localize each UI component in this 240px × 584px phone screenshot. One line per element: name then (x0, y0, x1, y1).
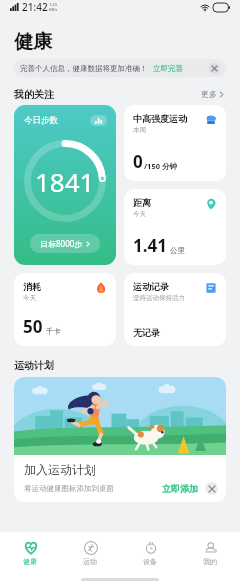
button[interactable]: 关闭 (209, 63, 220, 74)
staticText: 今天 (133, 210, 146, 218)
staticText: 我的 (203, 557, 217, 566)
staticText: 健康 (23, 557, 37, 566)
staticText: 1.41 (133, 234, 167, 257)
staticText: 0 (133, 150, 143, 173)
staticText: 21:42 (22, 0, 48, 14)
staticText: 目标8000步 (40, 238, 83, 249)
staticText: 公里 (168, 245, 185, 255)
staticText: 千卡 (44, 326, 61, 336)
staticText: 将运动健康图标添加到桌面 (24, 484, 114, 493)
button[interactable]: 关闭 (205, 482, 218, 495)
button[interactable]: 健康 (0, 532, 60, 574)
staticText: 立即添加 (162, 483, 198, 494)
staticText: 我的关注 (14, 88, 54, 101)
staticText: 加入运动计划 (24, 462, 96, 477)
staticText: 无记录 (133, 327, 160, 338)
button[interactable]: 统计 (90, 115, 107, 126)
staticText: 50 (23, 315, 43, 338)
button[interactable]: 立即添加 (162, 483, 198, 494)
button[interactable]: 今日步数 (14, 105, 116, 265)
button[interactable]: 设备 (120, 532, 180, 574)
staticText: 完善个人信息，健康数据将更加准确！ (20, 64, 148, 73)
button[interactable]: 立即完善 (153, 64, 183, 73)
staticText: 健康 (14, 30, 52, 54)
staticText: /150 分钟 (144, 161, 177, 171)
button[interactable]: 消耗 (14, 273, 116, 346)
staticText: 更多 (201, 89, 217, 99)
staticText: 运动记录 (133, 281, 169, 292)
staticText: 今天 (23, 294, 36, 302)
staticText: 1:20 (49, 2, 57, 7)
staticText: 运动 (83, 557, 97, 566)
staticText: 设备 (143, 557, 157, 566)
staticText: 距离 (133, 197, 151, 208)
button[interactable]: 运动记录 (124, 273, 226, 346)
staticText: 坚持运动保持活力 (133, 294, 185, 302)
button[interactable]: 中高强度运动 (124, 105, 226, 181)
staticText: 中高强度运动 (133, 113, 187, 124)
button[interactable]: 运动 (60, 532, 120, 574)
button[interactable]: 完善个人信息，健康数据将更加准确！ (13, 59, 227, 77)
staticText: KB/s (49, 7, 58, 12)
button[interactable]: 距离 (124, 189, 226, 265)
staticText: 立即完善 (153, 64, 183, 73)
button[interactable]: 更多 (199, 87, 226, 101)
button[interactable]: 我的 (180, 532, 240, 574)
staticText: 今日步数 (24, 115, 58, 126)
staticText: 1841 (35, 164, 95, 199)
button[interactable]: 目标8000步 (30, 234, 100, 253)
staticText: 本周 (133, 126, 146, 134)
staticText: 运动计划 (14, 359, 54, 372)
button[interactable]: 加入运动计划 (14, 377, 226, 502)
staticText: 消耗 (23, 281, 41, 292)
